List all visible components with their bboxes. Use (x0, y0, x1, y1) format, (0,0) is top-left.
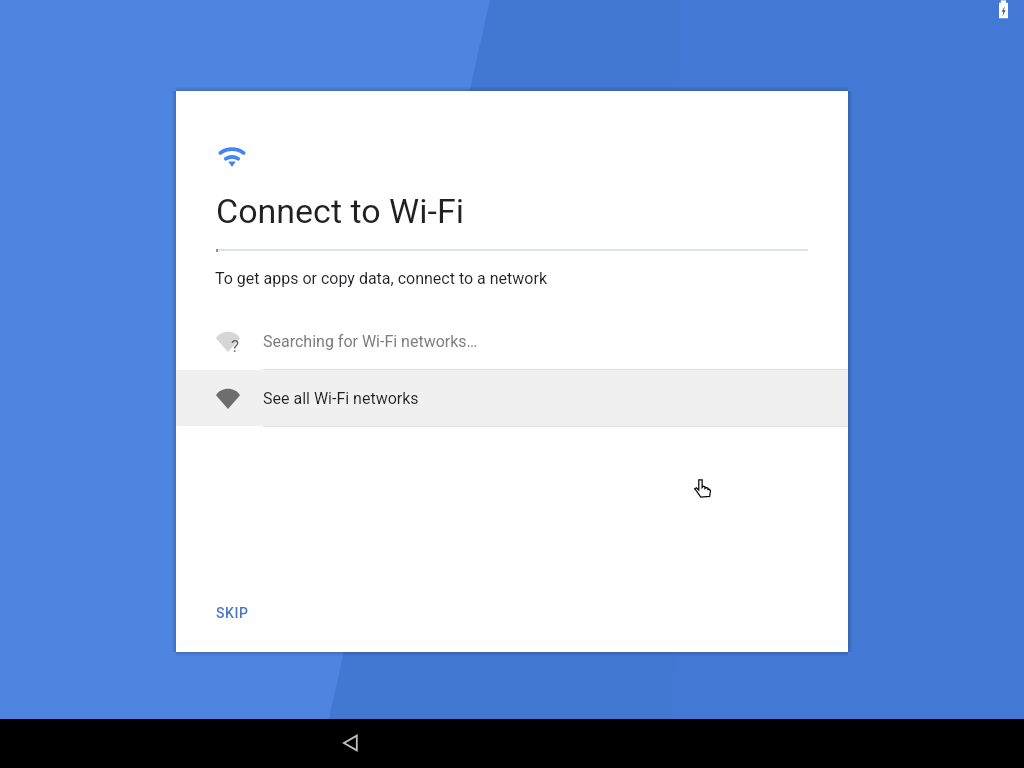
button[interactable]: See all Wi-Fi networks (176, 370, 848, 426)
button[interactable]: ? (176, 314, 848, 369)
staticText: To get apps or copy data, connect to a n… (215, 269, 547, 288)
staticText: ? (231, 336, 240, 356)
staticText: Connect to Wi-Fi (216, 191, 464, 231)
staticText: See all Wi-Fi networks (263, 389, 419, 408)
staticText: SKIP (216, 605, 249, 621)
staticText: Searching for Wi-Fi networks… (263, 332, 478, 351)
button[interactable]: SKIP (200, 593, 265, 633)
button[interactable]: Back (326, 719, 374, 767)
